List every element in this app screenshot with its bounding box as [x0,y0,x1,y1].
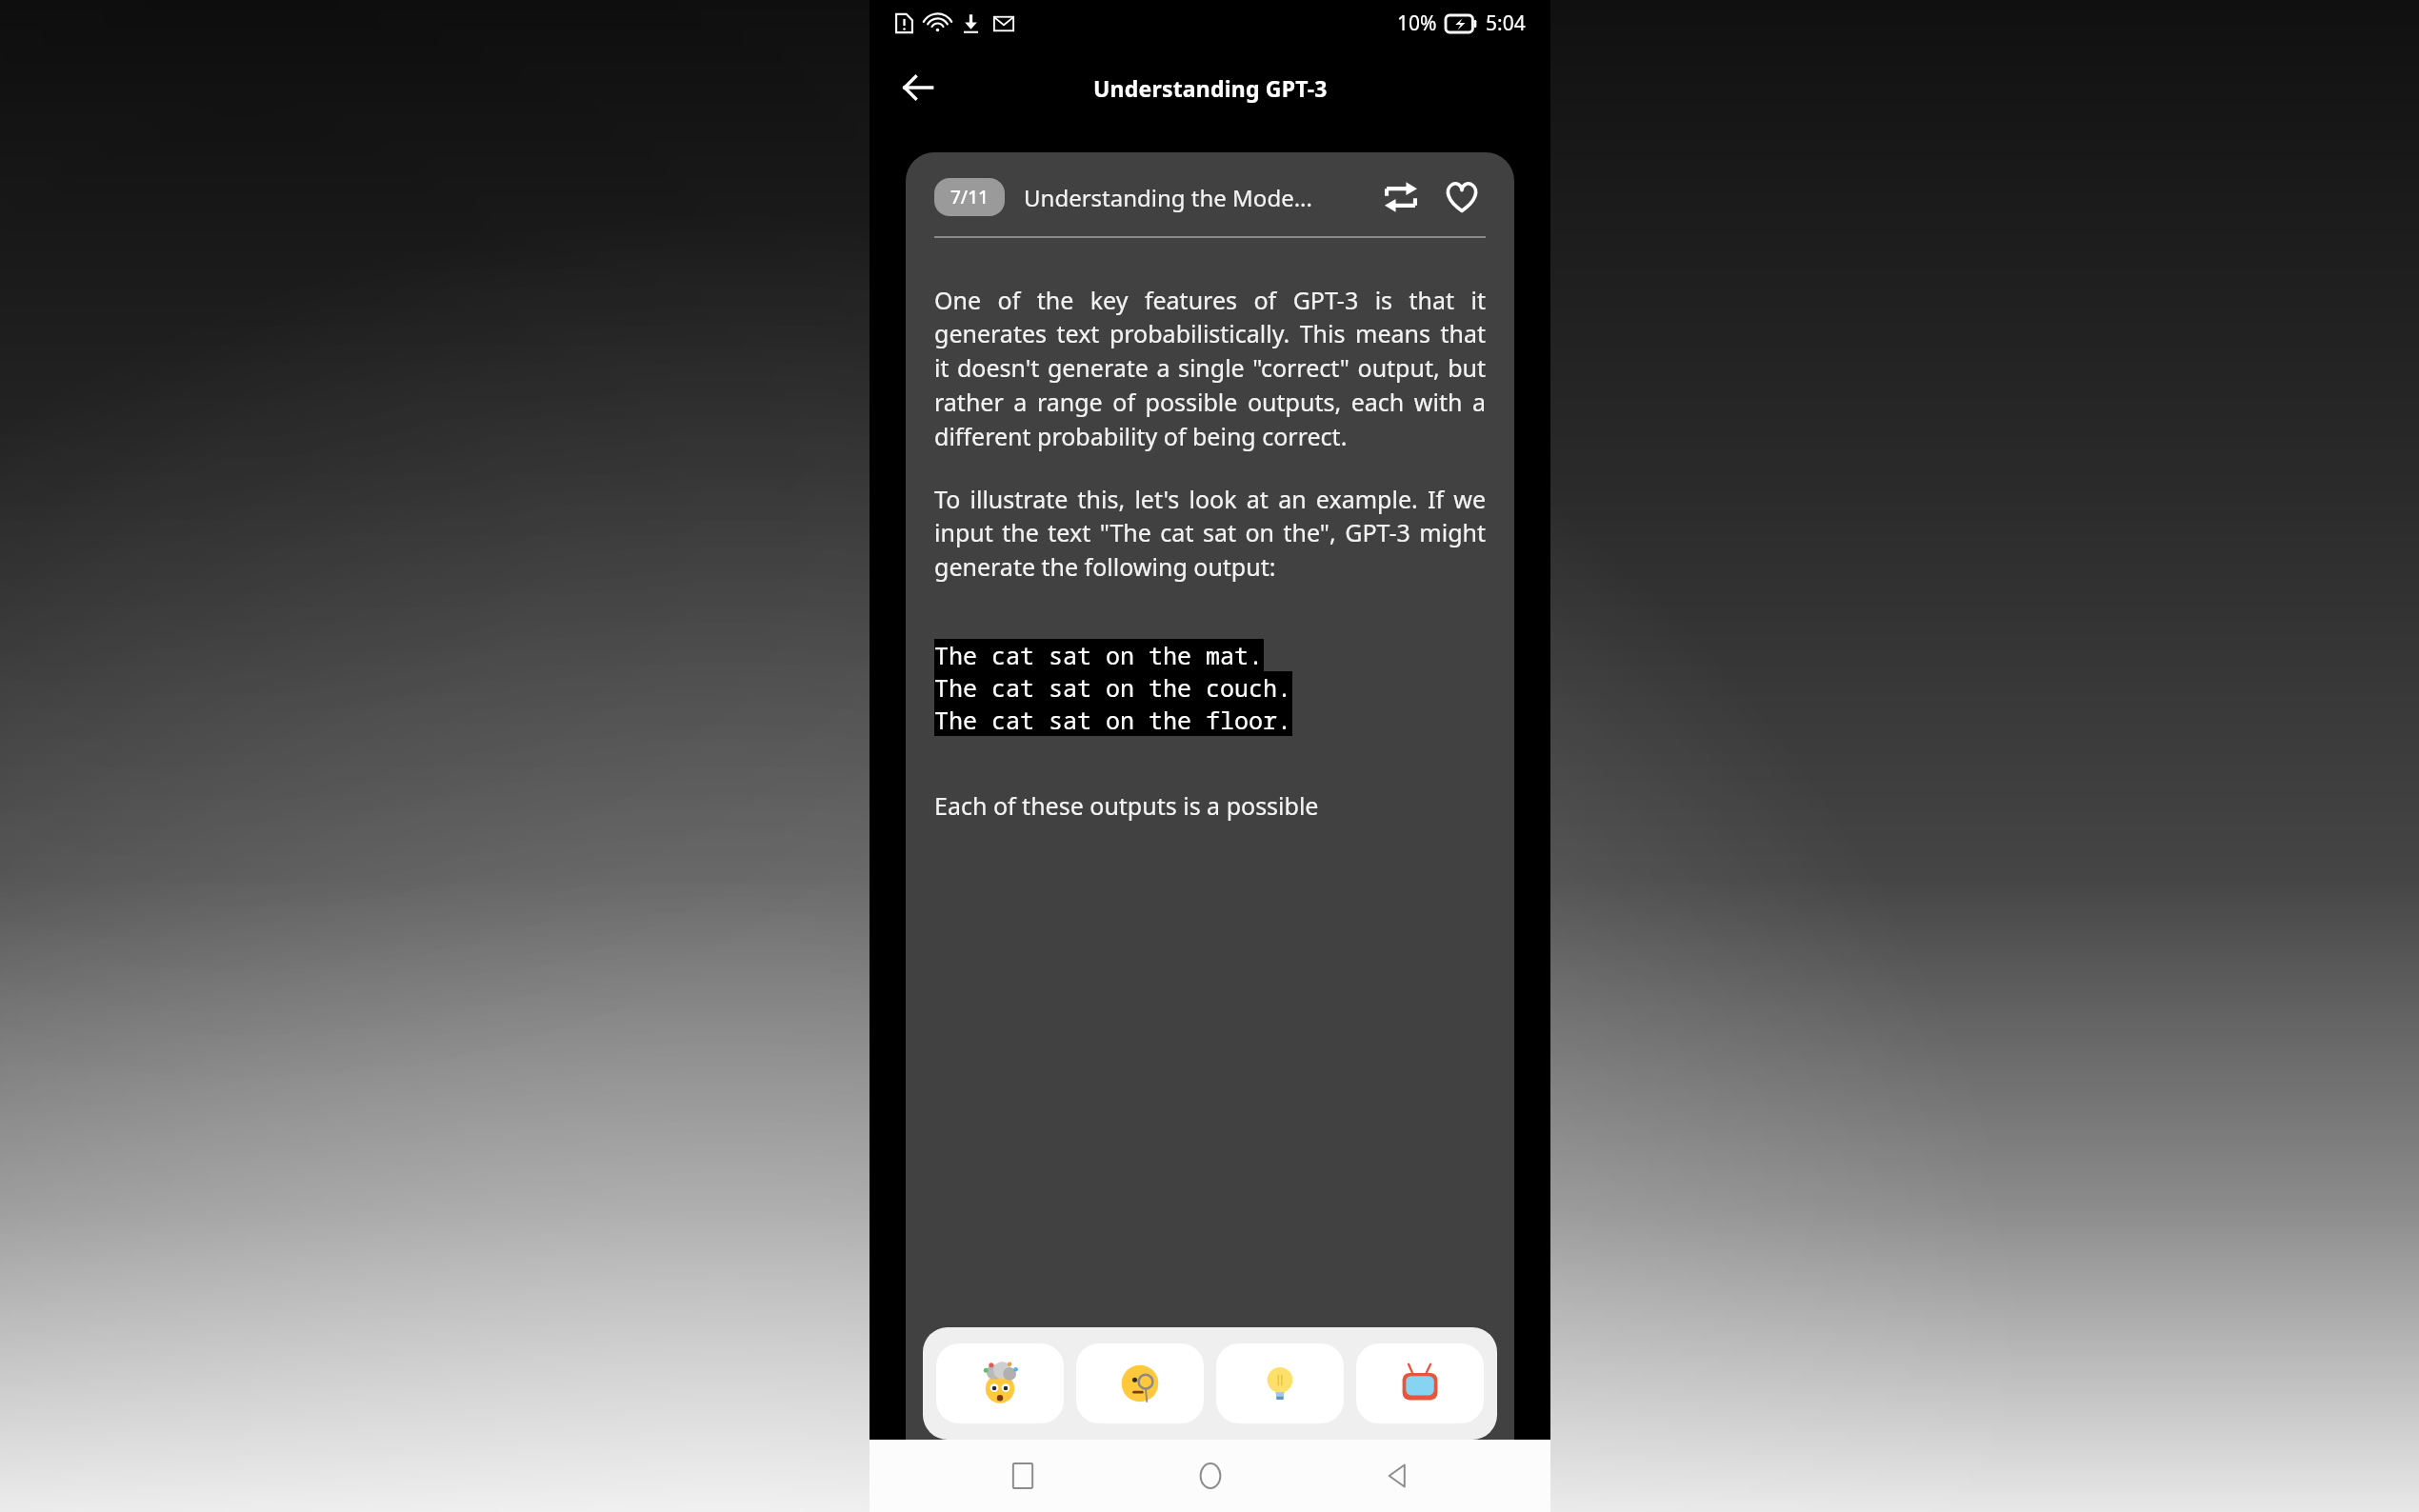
button[interactable]: Repeat [1377,173,1425,221]
button[interactable]: Watch reaction [1356,1343,1484,1423]
staticText: Understanding the Mode... [1024,182,1368,213]
button[interactable]: 7/11 [934,178,1005,216]
staticText: The cat sat on the mat. [934,639,1264,671]
staticText: 7/11 [950,185,989,209]
button[interactable]: Recents [990,1442,1056,1509]
button[interactable]: Back [1364,1442,1430,1509]
staticText: To illustrate this, let's look at an exa… [934,483,1486,584]
staticText: 10% [1397,10,1437,37]
button[interactable]: Back [890,60,946,115]
button[interactable]: Mind blown reaction [936,1343,1064,1423]
staticText: 5:04 [1486,10,1526,37]
staticText: Understanding GPT-3 [1093,73,1328,103]
button[interactable]: Home [1177,1442,1244,1509]
staticText: The cat sat on the couch. [934,671,1292,704]
staticText: Each of these outputs is a possible [934,789,1319,822]
button[interactable]: Favourite [1438,173,1486,221]
button[interactable]: Idea reaction [1216,1343,1344,1423]
staticText: One of the key features of GPT-3 is that… [934,284,1486,453]
staticText: The cat sat on the floor. [934,704,1292,736]
button[interactable]: Curious reaction [1076,1343,1204,1423]
